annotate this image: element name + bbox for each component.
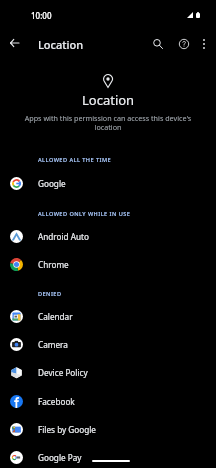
staticText: Facebook	[38, 396, 75, 407]
staticText: Device Policy	[38, 367, 88, 378]
button[interactable]: Android Auto	[0, 223, 216, 249]
staticText: DENIED	[38, 290, 62, 298]
staticText: Google Pay	[38, 452, 82, 463]
staticText: ALLOWED ONLY WHILE IN USE	[38, 210, 131, 218]
staticText: ALLOWED ALL THE TIME	[38, 156, 112, 164]
button[interactable]: Help	[173, 33, 195, 55]
staticText: Files by Google	[38, 424, 96, 435]
staticText: Android Auto	[38, 231, 89, 242]
staticText: 10:00	[31, 10, 52, 21]
button[interactable]: Back	[4, 32, 25, 53]
button[interactable]: Google	[0, 170, 216, 196]
staticText: Chrome	[38, 259, 69, 270]
staticText: Camera	[38, 339, 68, 350]
button[interactable]: Calendar	[0, 303, 216, 329]
staticText: Calendar	[38, 311, 73, 322]
button[interactable]: Chrome	[0, 251, 216, 277]
button[interactable]: More options	[193, 33, 215, 55]
button[interactable]: Device Policy	[0, 359, 216, 385]
staticText: Location	[38, 37, 84, 52]
button[interactable]: Files by Google	[0, 416, 216, 442]
button[interactable]: Facebook	[0, 388, 216, 414]
button[interactable]: Camera	[0, 331, 216, 357]
button[interactable]: Search	[147, 33, 169, 55]
staticText: Google	[38, 178, 66, 189]
button[interactable]: Google Pay	[0, 444, 216, 468]
staticText: Location	[82, 91, 135, 109]
staticText: Apps with this permission can access thi…	[13, 113, 203, 132]
